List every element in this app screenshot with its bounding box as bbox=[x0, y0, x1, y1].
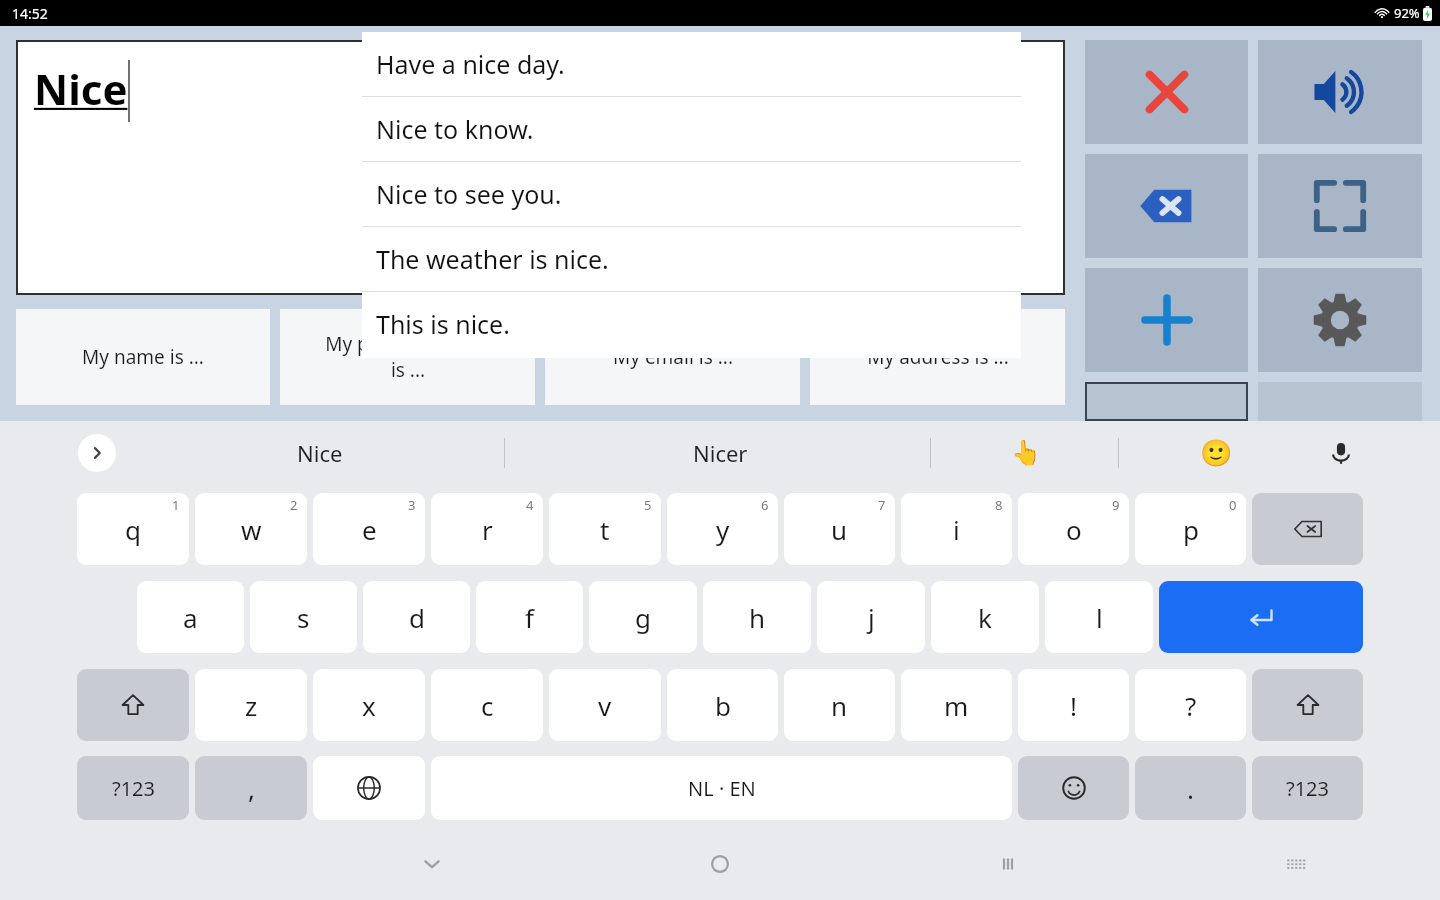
button[interactable]: Have a nice day. bbox=[362, 32, 1021, 96]
staticText: 🙂 bbox=[1200, 438, 1233, 468]
button[interactable]: k bbox=[931, 581, 1039, 653]
button[interactable] bbox=[313, 756, 425, 820]
staticText: 5 bbox=[644, 496, 652, 514]
button[interactable]: Clear bbox=[1085, 40, 1248, 144]
button[interactable] bbox=[1085, 382, 1248, 421]
button[interactable]: My phone number is ... bbox=[280, 309, 535, 405]
button[interactable]: p bbox=[1135, 493, 1246, 565]
button[interactable]: ?123 bbox=[77, 756, 189, 820]
staticText: Nice to see you. bbox=[376, 177, 562, 211]
button[interactable]: Nicer bbox=[580, 421, 860, 485]
button[interactable]: This is nice. bbox=[362, 292, 1021, 356]
staticText: r bbox=[482, 512, 493, 547]
staticText: u bbox=[831, 512, 848, 547]
button[interactable]: My name is ... bbox=[16, 309, 270, 405]
button[interactable]: z bbox=[195, 669, 307, 741]
staticText: o bbox=[1066, 512, 1082, 547]
button[interactable]: Recents bbox=[864, 827, 1152, 900]
staticText: 8 bbox=[995, 496, 1003, 514]
button[interactable]: n bbox=[784, 669, 895, 741]
button[interactable]: s bbox=[250, 581, 357, 653]
staticText: q bbox=[125, 512, 141, 547]
button[interactable]: . bbox=[1135, 756, 1246, 820]
button[interactable]: My email is ... bbox=[545, 309, 800, 405]
staticText: This is nice. bbox=[376, 307, 510, 341]
staticText: y bbox=[716, 512, 730, 547]
button[interactable]: Settings bbox=[1258, 268, 1422, 372]
staticText: j bbox=[868, 600, 875, 635]
staticText: t bbox=[600, 512, 610, 547]
button[interactable]: x bbox=[313, 669, 425, 741]
button[interactable]: NL · EN bbox=[431, 756, 1012, 820]
button[interactable]: ?123 bbox=[1252, 756, 1363, 820]
button[interactable]: Nice to see you. bbox=[362, 162, 1021, 226]
button[interactable]: Add bbox=[1085, 268, 1248, 372]
button[interactable]: t bbox=[549, 493, 661, 565]
button[interactable]: q bbox=[77, 493, 189, 565]
button[interactable]: o bbox=[1018, 493, 1129, 565]
staticText: z bbox=[245, 688, 258, 723]
button[interactable]: My address is ... bbox=[810, 309, 1065, 405]
staticText: 92% bbox=[1394, 4, 1420, 22]
button[interactable] bbox=[1252, 669, 1363, 741]
button[interactable]: Voice input bbox=[1310, 422, 1372, 484]
button[interactable]: Backspace bbox=[1085, 154, 1248, 258]
staticText: k bbox=[978, 600, 992, 635]
staticText: 6 bbox=[761, 496, 769, 514]
button[interactable] bbox=[77, 669, 189, 741]
button[interactable]: u bbox=[784, 493, 895, 565]
staticText: 👆 bbox=[1011, 439, 1041, 467]
button[interactable]: Nice bbox=[180, 421, 460, 485]
button[interactable]: e bbox=[313, 493, 425, 565]
staticText: Nicer bbox=[693, 438, 748, 468]
button[interactable]: Stickers bbox=[995, 422, 1057, 484]
button[interactable]: h bbox=[703, 581, 811, 653]
staticText: a bbox=[183, 600, 198, 635]
button[interactable]: g bbox=[589, 581, 697, 653]
button[interactable]: v bbox=[549, 669, 661, 741]
button[interactable]: r bbox=[431, 493, 543, 565]
button[interactable]: y bbox=[667, 493, 778, 565]
button[interactable] bbox=[1252, 493, 1363, 565]
button[interactable]: a bbox=[137, 581, 244, 653]
button[interactable]: l bbox=[1045, 581, 1153, 653]
button[interactable]: j bbox=[817, 581, 925, 653]
staticText: m bbox=[944, 688, 969, 723]
button[interactable]: Home bbox=[576, 827, 864, 900]
staticText: My address is ... bbox=[867, 344, 1009, 370]
button[interactable]: Emoji bbox=[1185, 422, 1247, 484]
button[interactable]: Expand toolbar bbox=[78, 434, 116, 472]
button[interactable]: b bbox=[667, 669, 778, 741]
staticText: e bbox=[362, 512, 377, 547]
button[interactable]: c bbox=[431, 669, 543, 741]
button[interactable]: m bbox=[901, 669, 1012, 741]
button[interactable]: Hide keyboard bbox=[288, 827, 576, 900]
button[interactable]: ? bbox=[1135, 669, 1246, 741]
staticText: Nice bbox=[34, 60, 128, 117]
button[interactable]: Nice to know. bbox=[362, 97, 1021, 161]
staticText: ?123 bbox=[112, 775, 155, 802]
button[interactable]: Switch keyboard bbox=[1152, 827, 1440, 900]
staticText: ?123 bbox=[1286, 775, 1329, 802]
staticText: c bbox=[481, 688, 494, 723]
staticText: 9 bbox=[1112, 496, 1120, 514]
button[interactable]: i bbox=[901, 493, 1012, 565]
staticText: p bbox=[1183, 512, 1199, 547]
button[interactable]: Fullscreen bbox=[1258, 154, 1422, 258]
button[interactable]: Speak bbox=[1258, 40, 1422, 144]
button[interactable]: w bbox=[195, 493, 307, 565]
staticText: 1 bbox=[172, 496, 180, 514]
staticText: i bbox=[953, 512, 960, 547]
button[interactable]: The weather is nice. bbox=[362, 227, 1021, 291]
button[interactable]: , bbox=[195, 756, 307, 820]
button[interactable]: d bbox=[363, 581, 470, 653]
staticText: , bbox=[248, 771, 255, 806]
button[interactable]: ! bbox=[1018, 669, 1129, 741]
staticText: My phone number is ... bbox=[325, 331, 491, 383]
button[interactable] bbox=[1018, 756, 1129, 820]
button[interactable] bbox=[1159, 581, 1363, 653]
staticText: 2 bbox=[290, 496, 298, 514]
staticText: s bbox=[297, 600, 310, 635]
button[interactable]: f bbox=[476, 581, 583, 653]
